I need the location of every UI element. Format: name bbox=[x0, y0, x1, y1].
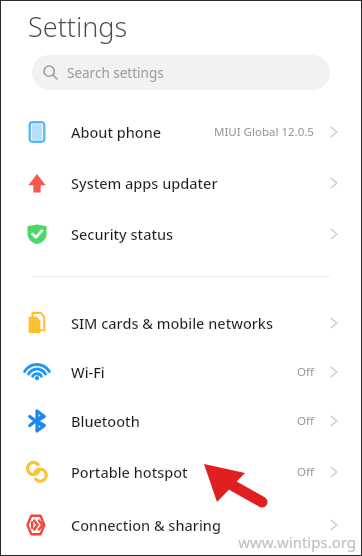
staticText: Connection & sharing bbox=[71, 515, 221, 535]
staticText: Search settings bbox=[67, 64, 164, 82]
staticText: MIUI Global 12.0.5 bbox=[214, 124, 314, 140]
staticText: Off bbox=[297, 413, 314, 429]
staticText: Off bbox=[297, 464, 314, 480]
button[interactable]: System apps updater bbox=[0, 157, 362, 208]
staticText: Wi-Fi bbox=[71, 362, 105, 382]
staticText: Portable hotspot bbox=[71, 462, 188, 482]
button[interactable]: Search settings bbox=[32, 55, 330, 90]
button[interactable]: About phone bbox=[0, 106, 362, 157]
button[interactable]: Wi-Fi bbox=[0, 347, 362, 396]
button[interactable]: Bluetooth bbox=[0, 396, 362, 445]
staticText: www.wintips.org bbox=[238, 532, 356, 552]
staticText: Off bbox=[297, 364, 314, 380]
button[interactable]: Connection & sharing bbox=[0, 499, 362, 550]
staticText: SIM cards & mobile networks bbox=[71, 313, 274, 333]
button[interactable]: Portable hotspot bbox=[0, 445, 362, 499]
staticText: Security status bbox=[71, 224, 174, 244]
button[interactable]: Security status bbox=[0, 208, 362, 259]
button[interactable]: SIM cards & mobile networks bbox=[0, 298, 362, 347]
staticText: Bluetooth bbox=[71, 411, 140, 431]
staticText: About phone bbox=[71, 122, 162, 142]
staticText: Settings bbox=[28, 8, 128, 45]
staticText: System apps updater bbox=[71, 173, 218, 193]
